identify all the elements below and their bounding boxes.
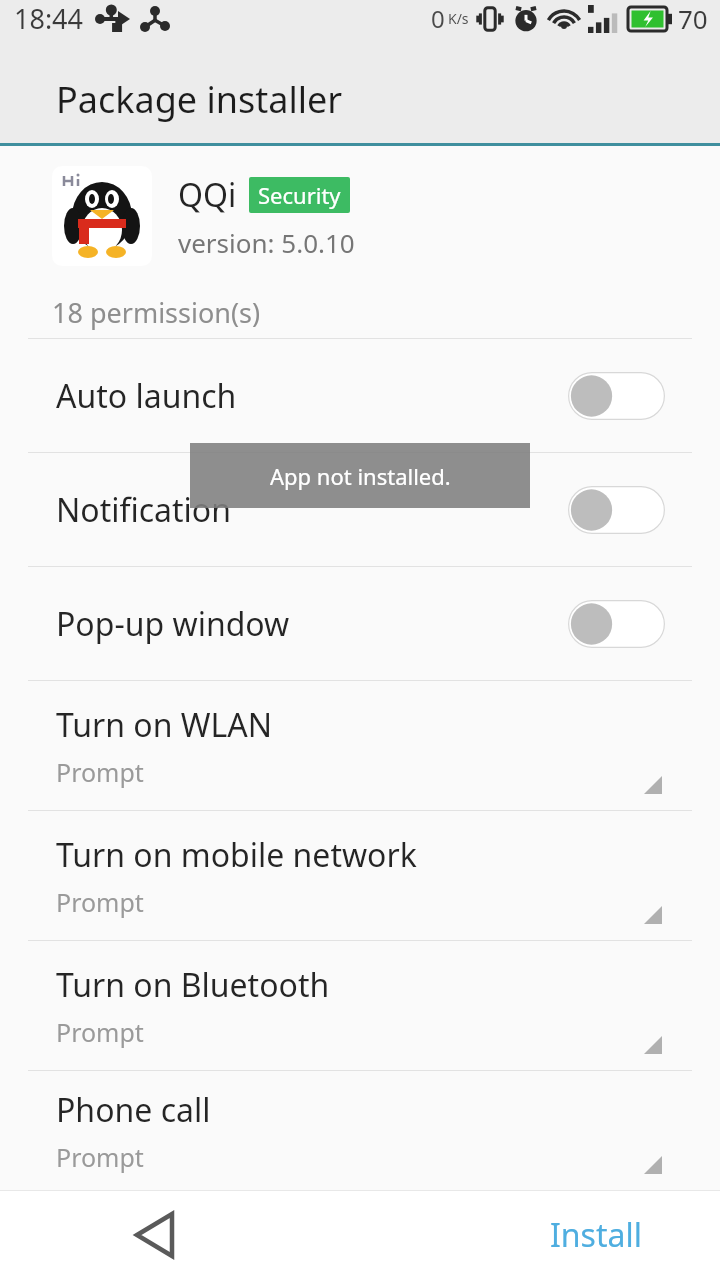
staticText: 70: [678, 1, 708, 36]
staticText: 18:44: [14, 0, 84, 37]
staticText: Prompt: [56, 885, 144, 919]
button[interactable]: Phone call: [0, 1071, 720, 1190]
staticText: Prompt: [56, 1140, 144, 1174]
button[interactable]: Turn on Bluetooth: [0, 941, 720, 1070]
staticText: App not installed.: [270, 461, 451, 491]
button[interactable]: Turn on WLAN: [0, 681, 720, 810]
staticText: Prompt: [56, 1015, 144, 1049]
staticText: 18 permission(s): [52, 294, 261, 331]
button[interactable]: Auto launch: [0, 339, 720, 452]
staticText: Prompt: [56, 755, 144, 789]
staticText: Turn on WLAN: [56, 703, 273, 747]
button[interactable]: Turn on mobile network: [0, 811, 720, 940]
staticText: Auto launch: [56, 374, 237, 418]
button[interactable]: Install: [530, 1199, 662, 1271]
staticText: QQi: [178, 173, 237, 217]
staticText: Install: [550, 1213, 642, 1257]
staticText: Phone call: [56, 1088, 211, 1132]
staticText: Security: [258, 180, 341, 210]
staticText: Pop-up window: [56, 602, 290, 646]
staticText: 0: [431, 2, 445, 35]
button[interactable]: Back: [118, 1198, 192, 1272]
staticText: K/s: [448, 9, 469, 28]
staticText: Turn on Bluetooth: [56, 963, 330, 1007]
button[interactable]: Pop-up window: [0, 567, 720, 680]
staticText: Notification: [56, 488, 232, 532]
staticText: version: 5.0.10: [178, 225, 355, 260]
button[interactable]: Notification: [0, 453, 720, 566]
staticText: Package installer: [56, 75, 343, 124]
staticText: Turn on mobile network: [56, 833, 417, 877]
